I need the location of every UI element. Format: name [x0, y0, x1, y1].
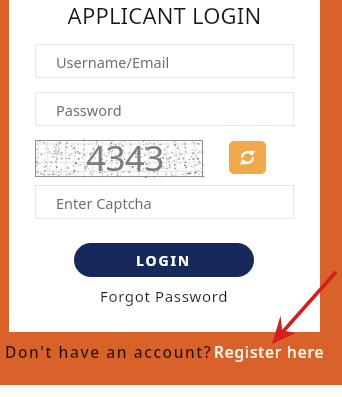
staticText: Forgot Password [100, 286, 229, 306]
staticText: Don't have an account? [5, 341, 213, 362]
button[interactable]: Enter Captcha [35, 185, 294, 219]
staticText: Password [56, 100, 122, 120]
button[interactable]: Password [35, 92, 294, 126]
staticText: APPLICANT LOGIN [9, 0, 320, 30]
button[interactable]: Refresh captcha [229, 141, 266, 174]
staticText: Enter Captcha [56, 193, 152, 213]
staticText: LOGIN [136, 251, 192, 270]
button[interactable]: Username/Email [35, 44, 294, 78]
button[interactable]: Forgot Password [35, 286, 294, 306]
staticText: Username/Email [56, 52, 170, 72]
button[interactable]: LOGIN [74, 243, 254, 277]
staticText: 4343 [86, 134, 164, 171]
button[interactable]: Register here [214, 341, 325, 362]
